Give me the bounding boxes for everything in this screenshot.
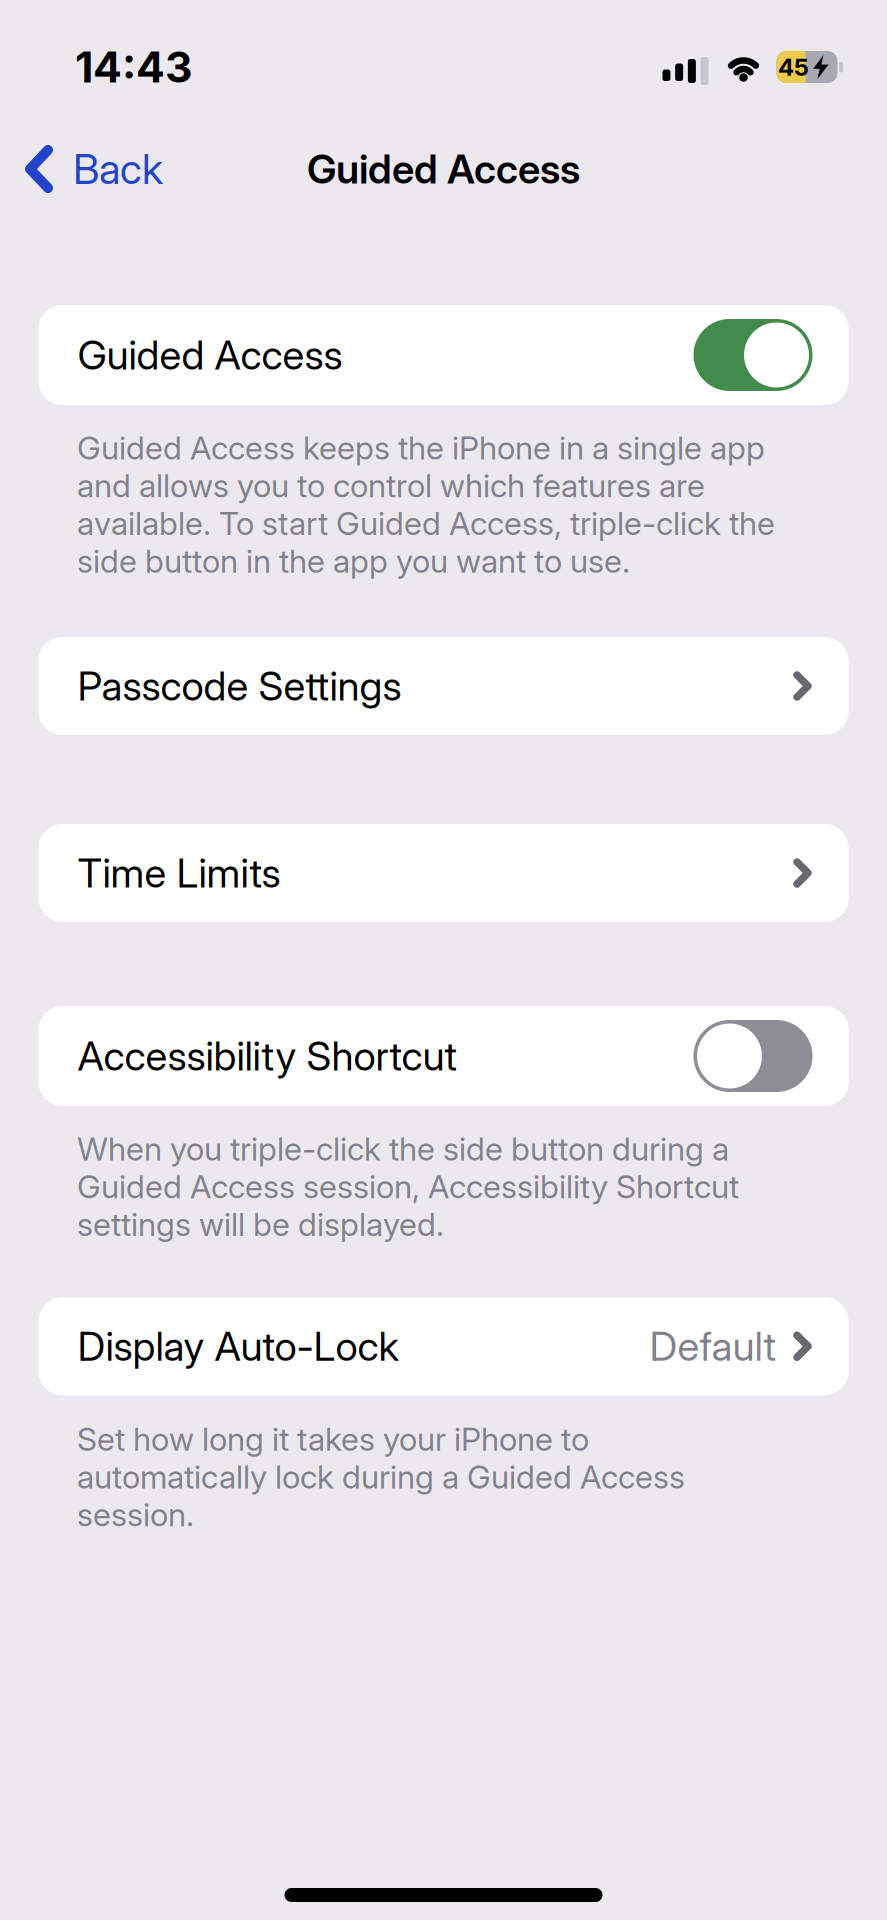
staticText: 14:43	[75, 42, 193, 92]
staticText: Display Auto-Lock	[77, 1323, 398, 1370]
button[interactable]: Display Auto-Lock	[38, 1297, 848, 1395]
staticText: Guided Access	[307, 145, 580, 193]
staticText: Accessibility Shortcut	[77, 1032, 457, 1080]
button[interactable]: Guided Access	[38, 305, 848, 405]
button[interactable]: Passcode Settings	[38, 637, 848, 735]
button[interactable]: On	[693, 319, 812, 391]
button[interactable]: Accessibility Shortcut	[38, 1006, 848, 1106]
staticText: Guided Access keeps the iPhone in a sing…	[77, 429, 775, 580]
staticText: Set how long it takes your iPhone to aut…	[77, 1420, 685, 1534]
button[interactable]: Back	[0, 145, 163, 193]
staticText: Passcode Settings	[77, 662, 401, 710]
staticText: 45	[778, 53, 809, 81]
staticText: Guided Access	[77, 331, 342, 379]
staticText: Back	[73, 145, 163, 193]
staticText: Time Limits	[77, 849, 280, 897]
button[interactable]: Off	[693, 1020, 812, 1092]
staticText: When you triple-click the side button du…	[77, 1130, 739, 1243]
staticText: Default	[649, 1323, 776, 1370]
button[interactable]: Time Limits	[38, 824, 848, 922]
